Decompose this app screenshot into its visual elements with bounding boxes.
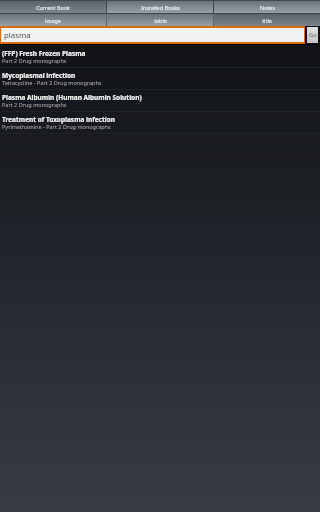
staticText: Part 2 Drug monographs [2, 101, 67, 108]
button[interactable]: Notes [214, 1, 320, 13]
button[interactable]: plasma [0, 26, 305, 44]
staticText: Installed Books [141, 4, 180, 11]
staticText: Plasma Albumin (Human Albumin Solution) [2, 93, 142, 102]
staticText: Pyrimethamine - Part 2 Drug monographs [2, 123, 111, 130]
button[interactable]: Treatment of Toxoplasma infection [0, 112, 320, 133]
staticText: image [45, 17, 61, 24]
staticText: Notes [260, 4, 275, 11]
staticText: Mycoplasmal infection [2, 71, 76, 80]
staticText: table [154, 17, 167, 24]
staticText: Tetracycline - Part 2 Drug monographs [2, 79, 102, 86]
staticText: Go [309, 31, 317, 39]
button[interactable]: Mycoplasmal infection [0, 68, 320, 89]
button[interactable]: Current Book [0, 1, 106, 13]
button[interactable]: image [0, 14, 106, 26]
staticText: Part 2 Drug monographs [2, 57, 67, 64]
staticText: Treatment of Toxoplasma infection [2, 115, 116, 124]
button[interactable]: Installed Books [107, 1, 213, 13]
staticText: plasma [4, 30, 31, 41]
button[interactable]: (FFP) Fresh Frozen Plasma [0, 45, 320, 67]
button[interactable]: table [107, 14, 213, 26]
button[interactable]: Plasma Albumin (Human Albumin Solution) [0, 90, 320, 111]
staticText: title [262, 17, 272, 24]
button[interactable]: title [214, 14, 320, 26]
button[interactable]: Go [306, 26, 320, 44]
staticText: Current Book [36, 4, 70, 11]
staticText: (FFP) Fresh Frozen Plasma [2, 49, 86, 58]
